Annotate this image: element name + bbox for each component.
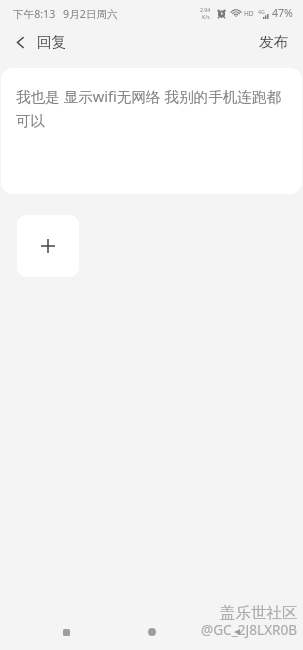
staticText: 发布 [259,33,289,51]
staticText: 盖乐世社区 [220,603,298,623]
staticText: 2.94 [200,6,211,13]
staticText: 回复 [37,33,67,51]
staticText: K/s [202,13,210,20]
button[interactable]: 发布 [245,28,303,56]
other: Back [13,35,28,50]
button[interactable]: Add photo [17,215,79,277]
staticText: 下午8:13 [13,7,56,21]
button[interactable]: Back [223,618,251,646]
staticText: 4G [258,8,265,15]
button[interactable]: Recent apps [52,618,80,646]
staticText: 我也是 显示wifi无网络 我别的手机连跑都 可以 [16,86,282,130]
staticText: @GC_2J8LXR0B [201,620,298,639]
button[interactable]: Back [0,28,79,56]
staticText: 47% [272,6,293,20]
staticText: HD [244,9,254,18]
button[interactable]: 我也是 显示wifi无网络 我别的手机连跑都 可以 [1,68,302,194]
staticText: 9月2日周六 [63,7,118,21]
button[interactable]: Home [138,618,166,646]
